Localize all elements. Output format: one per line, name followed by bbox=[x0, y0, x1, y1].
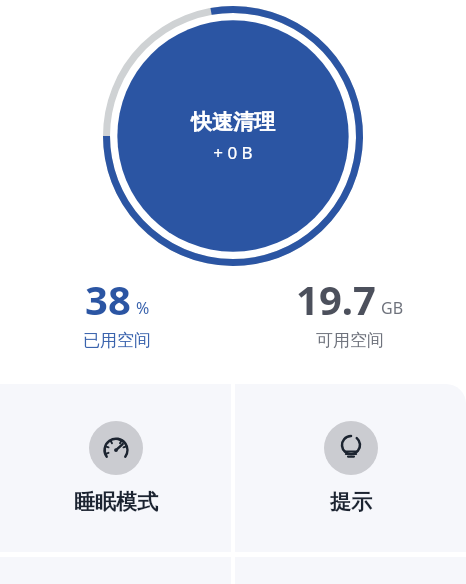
button[interactable]: 快速清理 bbox=[191, 109, 275, 164]
staticText: GB bbox=[381, 297, 404, 319]
staticText: 提示 bbox=[330, 489, 372, 515]
button[interactable]: 38 bbox=[0, 272, 233, 372]
staticText: % bbox=[136, 297, 150, 319]
button[interactable]: 睡眠模式 bbox=[0, 384, 231, 552]
staticText: + 0 B bbox=[213, 141, 253, 164]
button[interactable]: 19.7 bbox=[233, 272, 466, 372]
staticText: 可用空间 bbox=[316, 330, 384, 351]
staticText: 38 bbox=[85, 272, 131, 326]
staticText: 19.7 bbox=[296, 272, 376, 326]
other: 提示 bbox=[324, 421, 378, 475]
other: 睡眠模式 bbox=[89, 421, 143, 475]
staticText: 已用空间 bbox=[83, 330, 151, 351]
button[interactable]: 提示 bbox=[235, 384, 466, 552]
staticText: 快速清理 bbox=[191, 109, 275, 135]
staticText: 睡眠模式 bbox=[74, 489, 158, 515]
